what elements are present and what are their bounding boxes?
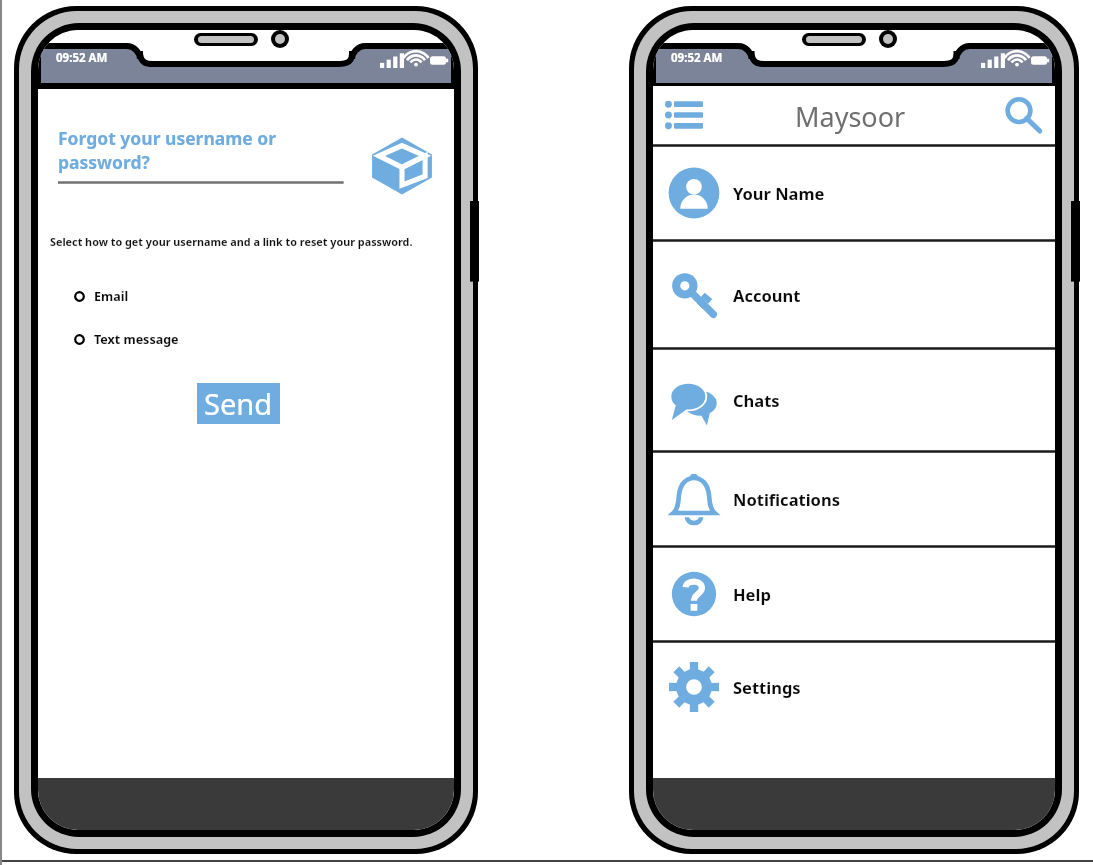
button[interactable]: Chats: [653, 350, 1055, 450]
staticText: Chats: [733, 389, 780, 411]
staticText: Forgot your username or password?: [58, 126, 277, 174]
button[interactable]: Text message: [38, 329, 454, 350]
staticText: Notifications: [733, 488, 840, 510]
button[interactable]: Search: [999, 91, 1047, 139]
button[interactable]: Help: [653, 548, 1055, 640]
staticText: 09:52 AM: [671, 50, 723, 66]
button[interactable]: Menu: [659, 94, 709, 136]
staticText: Maysoor: [795, 98, 906, 135]
staticText: Select how to get your username and a li…: [50, 234, 413, 249]
staticText: Account: [733, 284, 801, 306]
staticText: Send: [204, 384, 273, 423]
staticText: Text message: [94, 331, 179, 348]
staticText: Settings: [733, 676, 801, 698]
button[interactable]: Your Name: [653, 147, 1055, 239]
button[interactable]: Settings: [653, 643, 1055, 731]
button[interactable]: Email: [38, 286, 454, 307]
staticText: Help: [733, 583, 771, 605]
staticText: Email: [94, 288, 129, 305]
button[interactable]: Account: [653, 242, 1055, 347]
staticText: 09:52 AM: [56, 50, 108, 66]
staticText: Your Name: [733, 182, 825, 204]
button[interactable]: Notifications: [653, 453, 1055, 545]
button[interactable]: Send: [197, 383, 280, 424]
